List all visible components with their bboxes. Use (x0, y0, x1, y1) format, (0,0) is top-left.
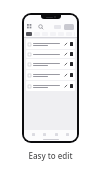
button[interactable]: Tab (42, 132, 47, 137)
button[interactable]: Search (38, 24, 44, 30)
button[interactable]: Select (28, 43, 31, 46)
button[interactable]: Delete (70, 42, 73, 46)
button[interactable]: Edit (64, 42, 68, 46)
button[interactable]: Edit (64, 73, 68, 77)
button[interactable]: Tab (54, 132, 59, 137)
button[interactable]: Select (26, 39, 75, 49)
button[interactable]: Tab (31, 132, 36, 137)
button[interactable]: Edit (64, 62, 68, 66)
button[interactable]: Select (28, 85, 31, 88)
button[interactable]: Select (28, 74, 31, 77)
button[interactable]: Action (64, 24, 74, 30)
button[interactable]: Select (26, 50, 75, 58)
button[interactable]: Delete (70, 73, 73, 77)
button[interactable]: Select (26, 59, 75, 69)
button[interactable]: Delete (70, 62, 73, 66)
button[interactable]: All (26, 32, 32, 36)
button[interactable]: Delete (70, 84, 73, 88)
button[interactable]: Select (28, 63, 31, 66)
button[interactable]: Select (26, 70, 75, 80)
button[interactable]: Select (28, 53, 31, 56)
button[interactable]: Edit (64, 52, 68, 56)
button[interactable]: Delete (70, 52, 73, 56)
staticText: Easy to edit (28, 150, 73, 161)
button[interactable]: Menu (27, 24, 33, 30)
button[interactable]: Select (26, 81, 75, 91)
button[interactable]: Tab (65, 132, 70, 137)
button[interactable]: Edit (64, 84, 68, 88)
